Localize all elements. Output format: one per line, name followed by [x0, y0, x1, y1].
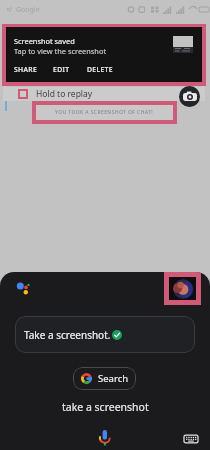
- staticText: Google: [16, 5, 40, 15]
- button[interactable]: EDIT: [53, 65, 70, 74]
- staticText: Take a screenshot.: [24, 328, 111, 342]
- staticText: take a screenshot: [62, 400, 149, 414]
- button[interactable]: Voice input: [95, 427, 115, 447]
- button[interactable]: DELETE: [87, 65, 113, 74]
- button[interactable]: Camera: [179, 86, 200, 107]
- button[interactable]: Keyboard: [181, 429, 200, 448]
- button[interactable]: Take a screenshot.: [15, 316, 195, 353]
- staticText: YOU TOOK A SCREENSHOT OF CHAT!: [55, 109, 154, 116]
- staticText: Tap to view the screenshot: [14, 46, 107, 56]
- button[interactable]: Hold to replay: [0, 87, 210, 101]
- button[interactable]: SHARE: [14, 65, 38, 74]
- staticText: Hold to replay: [36, 88, 93, 100]
- staticText: Search: [98, 372, 129, 385]
- button[interactable]: Search: [73, 367, 136, 390]
- button[interactable]: Profile: [173, 279, 193, 299]
- staticText: Screenshot saved: [14, 36, 75, 46]
